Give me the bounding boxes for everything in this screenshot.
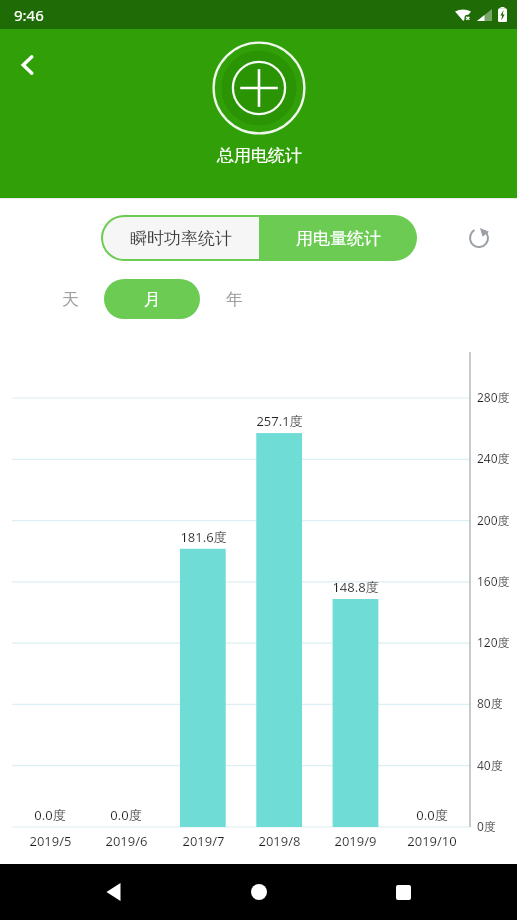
- staticText: 0.0度: [34, 806, 66, 824]
- staticText: 年: [226, 289, 243, 310]
- button[interactable]: 天: [42, 279, 98, 319]
- staticText: 2019/6: [105, 832, 148, 850]
- button[interactable]: Refresh: [459, 218, 499, 258]
- staticText: 160度: [477, 573, 510, 589]
- staticText: 120度: [477, 634, 510, 650]
- staticText: 天: [62, 289, 79, 310]
- button[interactable]: 用电量统计: [259, 215, 417, 261]
- staticText: 用电量统计: [296, 228, 381, 249]
- button[interactable]: 月: [104, 279, 200, 319]
- staticText: 280度: [477, 389, 510, 405]
- staticText: 总用电统计: [217, 145, 302, 166]
- staticText: 40度: [477, 757, 503, 773]
- button[interactable]: 年: [206, 279, 262, 319]
- staticText: 200度: [477, 512, 510, 528]
- button[interactable]: 瞬时功率统计: [103, 217, 259, 259]
- staticText: 240度: [477, 450, 510, 466]
- staticText: 0.0度: [416, 806, 448, 824]
- button[interactable]: Back: [83, 864, 145, 920]
- button[interactable]: Home: [228, 864, 290, 920]
- staticText: 80度: [477, 695, 503, 711]
- staticText: 0.0度: [110, 806, 142, 824]
- staticText: 9:46: [14, 5, 44, 25]
- staticText: 2019/10: [407, 832, 457, 850]
- staticText: 257.1度: [256, 412, 303, 430]
- staticText: 148.8度: [332, 578, 379, 596]
- staticText: 月: [144, 289, 161, 310]
- staticText: 2019/8: [258, 832, 301, 850]
- staticText: 2019/9: [334, 832, 377, 850]
- staticText: 2019/7: [182, 832, 225, 850]
- staticText: 2019/5: [29, 832, 72, 850]
- button[interactable]: Recents: [372, 864, 434, 920]
- staticText: 瞬时功率统计: [130, 228, 232, 249]
- button[interactable]: Back: [4, 41, 52, 89]
- staticText: 181.6度: [180, 528, 227, 546]
- staticText: 0度: [477, 818, 496, 834]
